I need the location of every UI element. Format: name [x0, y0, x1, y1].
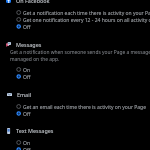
staticText: Messages	[16, 41, 42, 48]
button[interactable]: On	[0, 139, 150, 146]
button[interactable]: Get an email each time there is activity…	[0, 103, 150, 110]
staticText: Get one notification every 12 - 24 hours…	[23, 17, 150, 24]
button[interactable]: On	[0, 66, 150, 73]
button[interactable]: Off	[0, 110, 150, 117]
button[interactable]: Get one notification every 12 - 24 hours…	[0, 16, 150, 23]
staticText: Off	[23, 74, 31, 81]
staticText: Email	[17, 91, 32, 98]
button[interactable]: Get a notification each time there is ac…	[0, 9, 150, 16]
button[interactable]: Email	[0, 90, 150, 99]
staticText: Text Messages	[16, 127, 54, 134]
staticText: On	[23, 140, 30, 147]
button[interactable]: On Facebook	[0, 0, 150, 5]
staticText: Off	[23, 24, 31, 31]
button[interactable]: Off	[0, 23, 150, 30]
button[interactable]: Messages	[0, 40, 150, 49]
staticText: On Facebook	[16, 0, 50, 4]
staticText: Get a notification when someone sends yo…	[10, 49, 150, 63]
staticText: On	[23, 67, 30, 74]
button[interactable]: Off	[0, 146, 150, 150]
button[interactable]: Text Messages	[0, 126, 150, 135]
staticText: Get a notification each time there is ac…	[23, 10, 150, 17]
staticText: Get an email each time there is activity…	[23, 104, 146, 111]
button[interactable]: Off	[0, 73, 150, 80]
staticText: Off	[23, 111, 31, 118]
staticText: Off	[23, 147, 31, 150]
